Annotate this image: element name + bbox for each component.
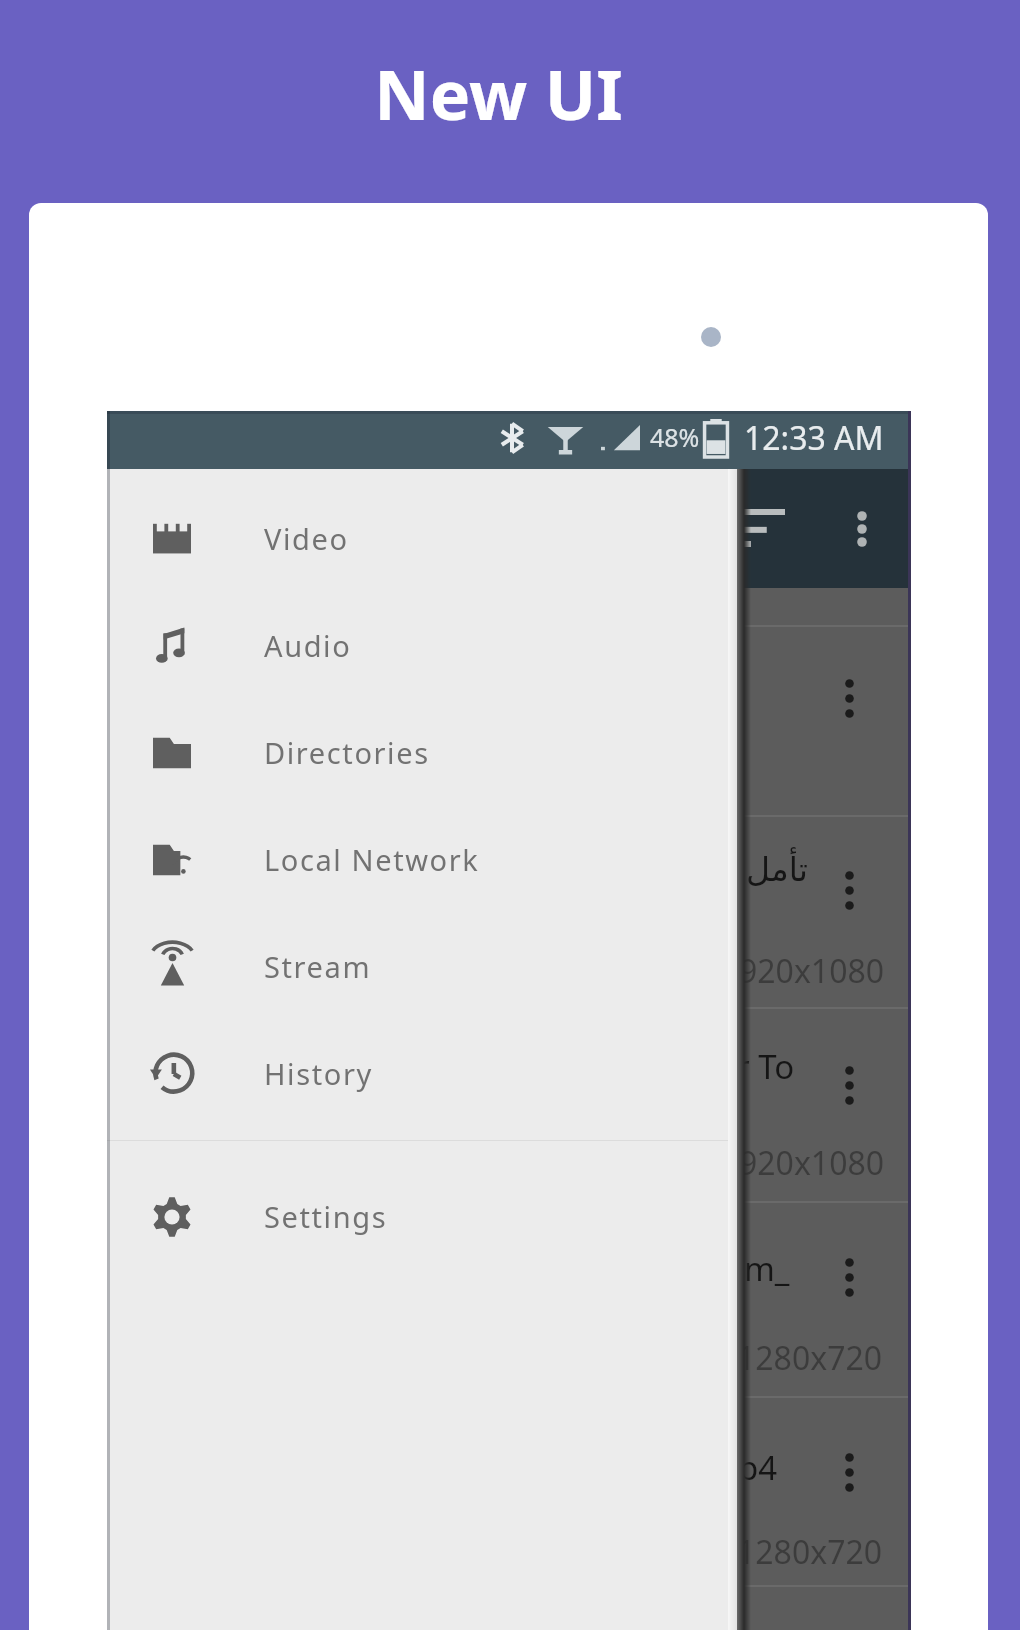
staticText: تأمل xyxy=(746,850,808,888)
button[interactable]: Sort xyxy=(714,483,808,573)
staticText: 920x1080 xyxy=(739,1141,885,1185)
button[interactable]: History xyxy=(107,1020,728,1127)
staticText: Audio xyxy=(264,626,352,665)
staticText: 1280x720 xyxy=(737,1530,883,1574)
staticText: Local Network xyxy=(264,840,480,879)
button[interactable]: Item menu xyxy=(844,1065,855,1106)
button[interactable]: Media item xyxy=(107,1396,911,1585)
staticText: Video xyxy=(264,519,349,558)
button[interactable]: Media item xyxy=(107,815,911,1007)
staticText: Stream xyxy=(264,947,372,986)
staticText: Settings xyxy=(264,1197,388,1236)
button[interactable]: Video xyxy=(107,485,728,592)
button[interactable]: Settings xyxy=(107,1163,728,1270)
staticText: New UI xyxy=(374,47,623,140)
button[interactable]: Local Network xyxy=(107,806,728,913)
button[interactable]: Media item xyxy=(107,1201,911,1396)
staticText: 1280x720 xyxy=(737,1336,883,1380)
staticText: r To xyxy=(736,1044,795,1089)
staticText: History xyxy=(264,1054,373,1093)
button[interactable]: Media item xyxy=(107,1007,911,1201)
button[interactable]: Item menu xyxy=(844,1452,855,1493)
staticText: Directories xyxy=(264,733,430,772)
button[interactable]: Item menu xyxy=(844,870,855,911)
button[interactable]: Audio xyxy=(107,592,728,699)
button[interactable]: Media item xyxy=(107,625,911,815)
button[interactable]: More options xyxy=(817,469,907,588)
staticText: m_ xyxy=(744,1246,790,1291)
staticText: 48% xyxy=(650,420,700,454)
button[interactable]: Item menu xyxy=(844,1257,855,1298)
button[interactable]: Stream xyxy=(107,913,728,1020)
button[interactable]: Item menu xyxy=(844,678,855,719)
staticText: p4 xyxy=(738,1445,778,1490)
button[interactable]: Directories xyxy=(107,699,728,806)
staticText: 12:33 AM xyxy=(744,416,884,460)
staticText: 920x1080 xyxy=(739,949,885,993)
